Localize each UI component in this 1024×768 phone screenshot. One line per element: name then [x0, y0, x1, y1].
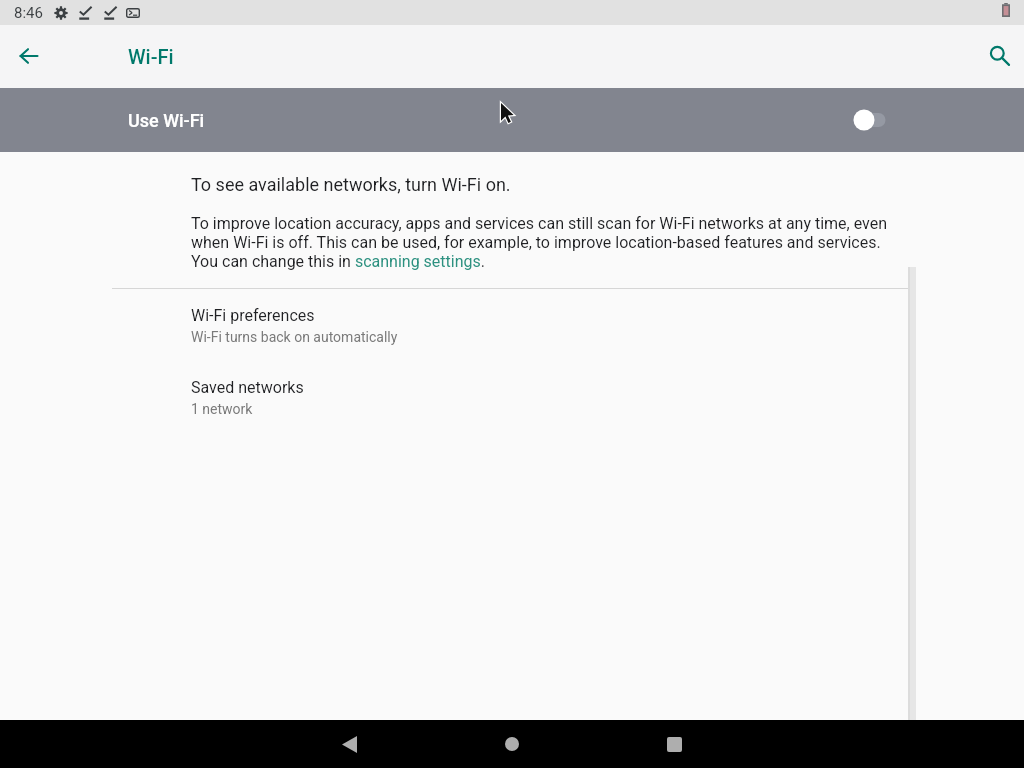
button[interactable]: Recent apps: [650, 720, 698, 768]
staticText: Wi-Fi turns back on automatically: [191, 329, 398, 346]
staticText: 8:46: [14, 4, 43, 22]
staticText: 1 network: [191, 401, 253, 418]
button[interactable]: Wi-Fi preferences: [0, 299, 1024, 371]
staticText: To see available networks, turn Wi-Fi on…: [191, 174, 511, 196]
button[interactable]: Use Wi-Fi: [843, 98, 895, 142]
staticText: Wi-Fi preferences: [191, 306, 315, 325]
button[interactable]: Navigate up: [9, 37, 47, 75]
staticText: Use Wi-Fi: [128, 110, 205, 132]
button[interactable]: Back: [325, 720, 373, 768]
button[interactable]: Search: [982, 38, 1020, 76]
staticText: Saved networks: [191, 378, 304, 397]
button[interactable]: Saved networks: [0, 371, 1024, 443]
button[interactable]: Use Wi-Fi: [0, 88, 1024, 152]
staticText: Wi-Fi: [128, 45, 174, 69]
button[interactable]: Home: [488, 720, 536, 768]
staticText: To improve location accuracy, apps and s…: [191, 214, 891, 271]
button[interactable]: scanning settings: [353, 252, 480, 270]
